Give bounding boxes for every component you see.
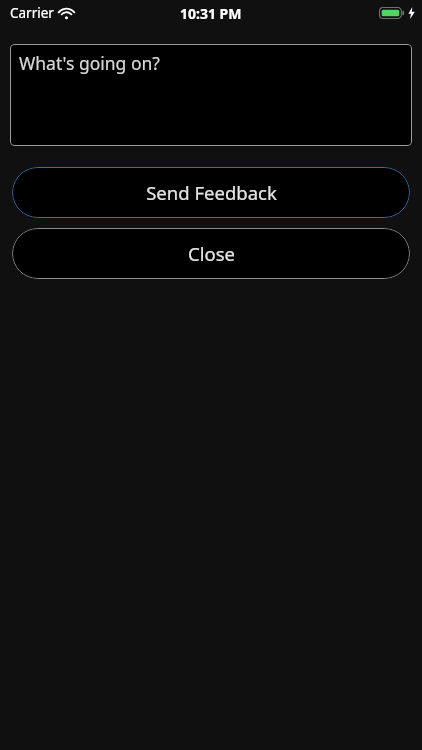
staticText: What's going on?: [19, 51, 160, 75]
staticText: 10:31 PM: [180, 4, 242, 23]
staticText: Carrier: [10, 4, 54, 22]
button[interactable]: Close: [12, 228, 410, 279]
staticText: Send Feedback: [146, 180, 277, 205]
button[interactable]: What's going on?: [10, 44, 412, 146]
button[interactable]: Send Feedback: [12, 167, 410, 218]
staticText: Close: [188, 241, 235, 266]
